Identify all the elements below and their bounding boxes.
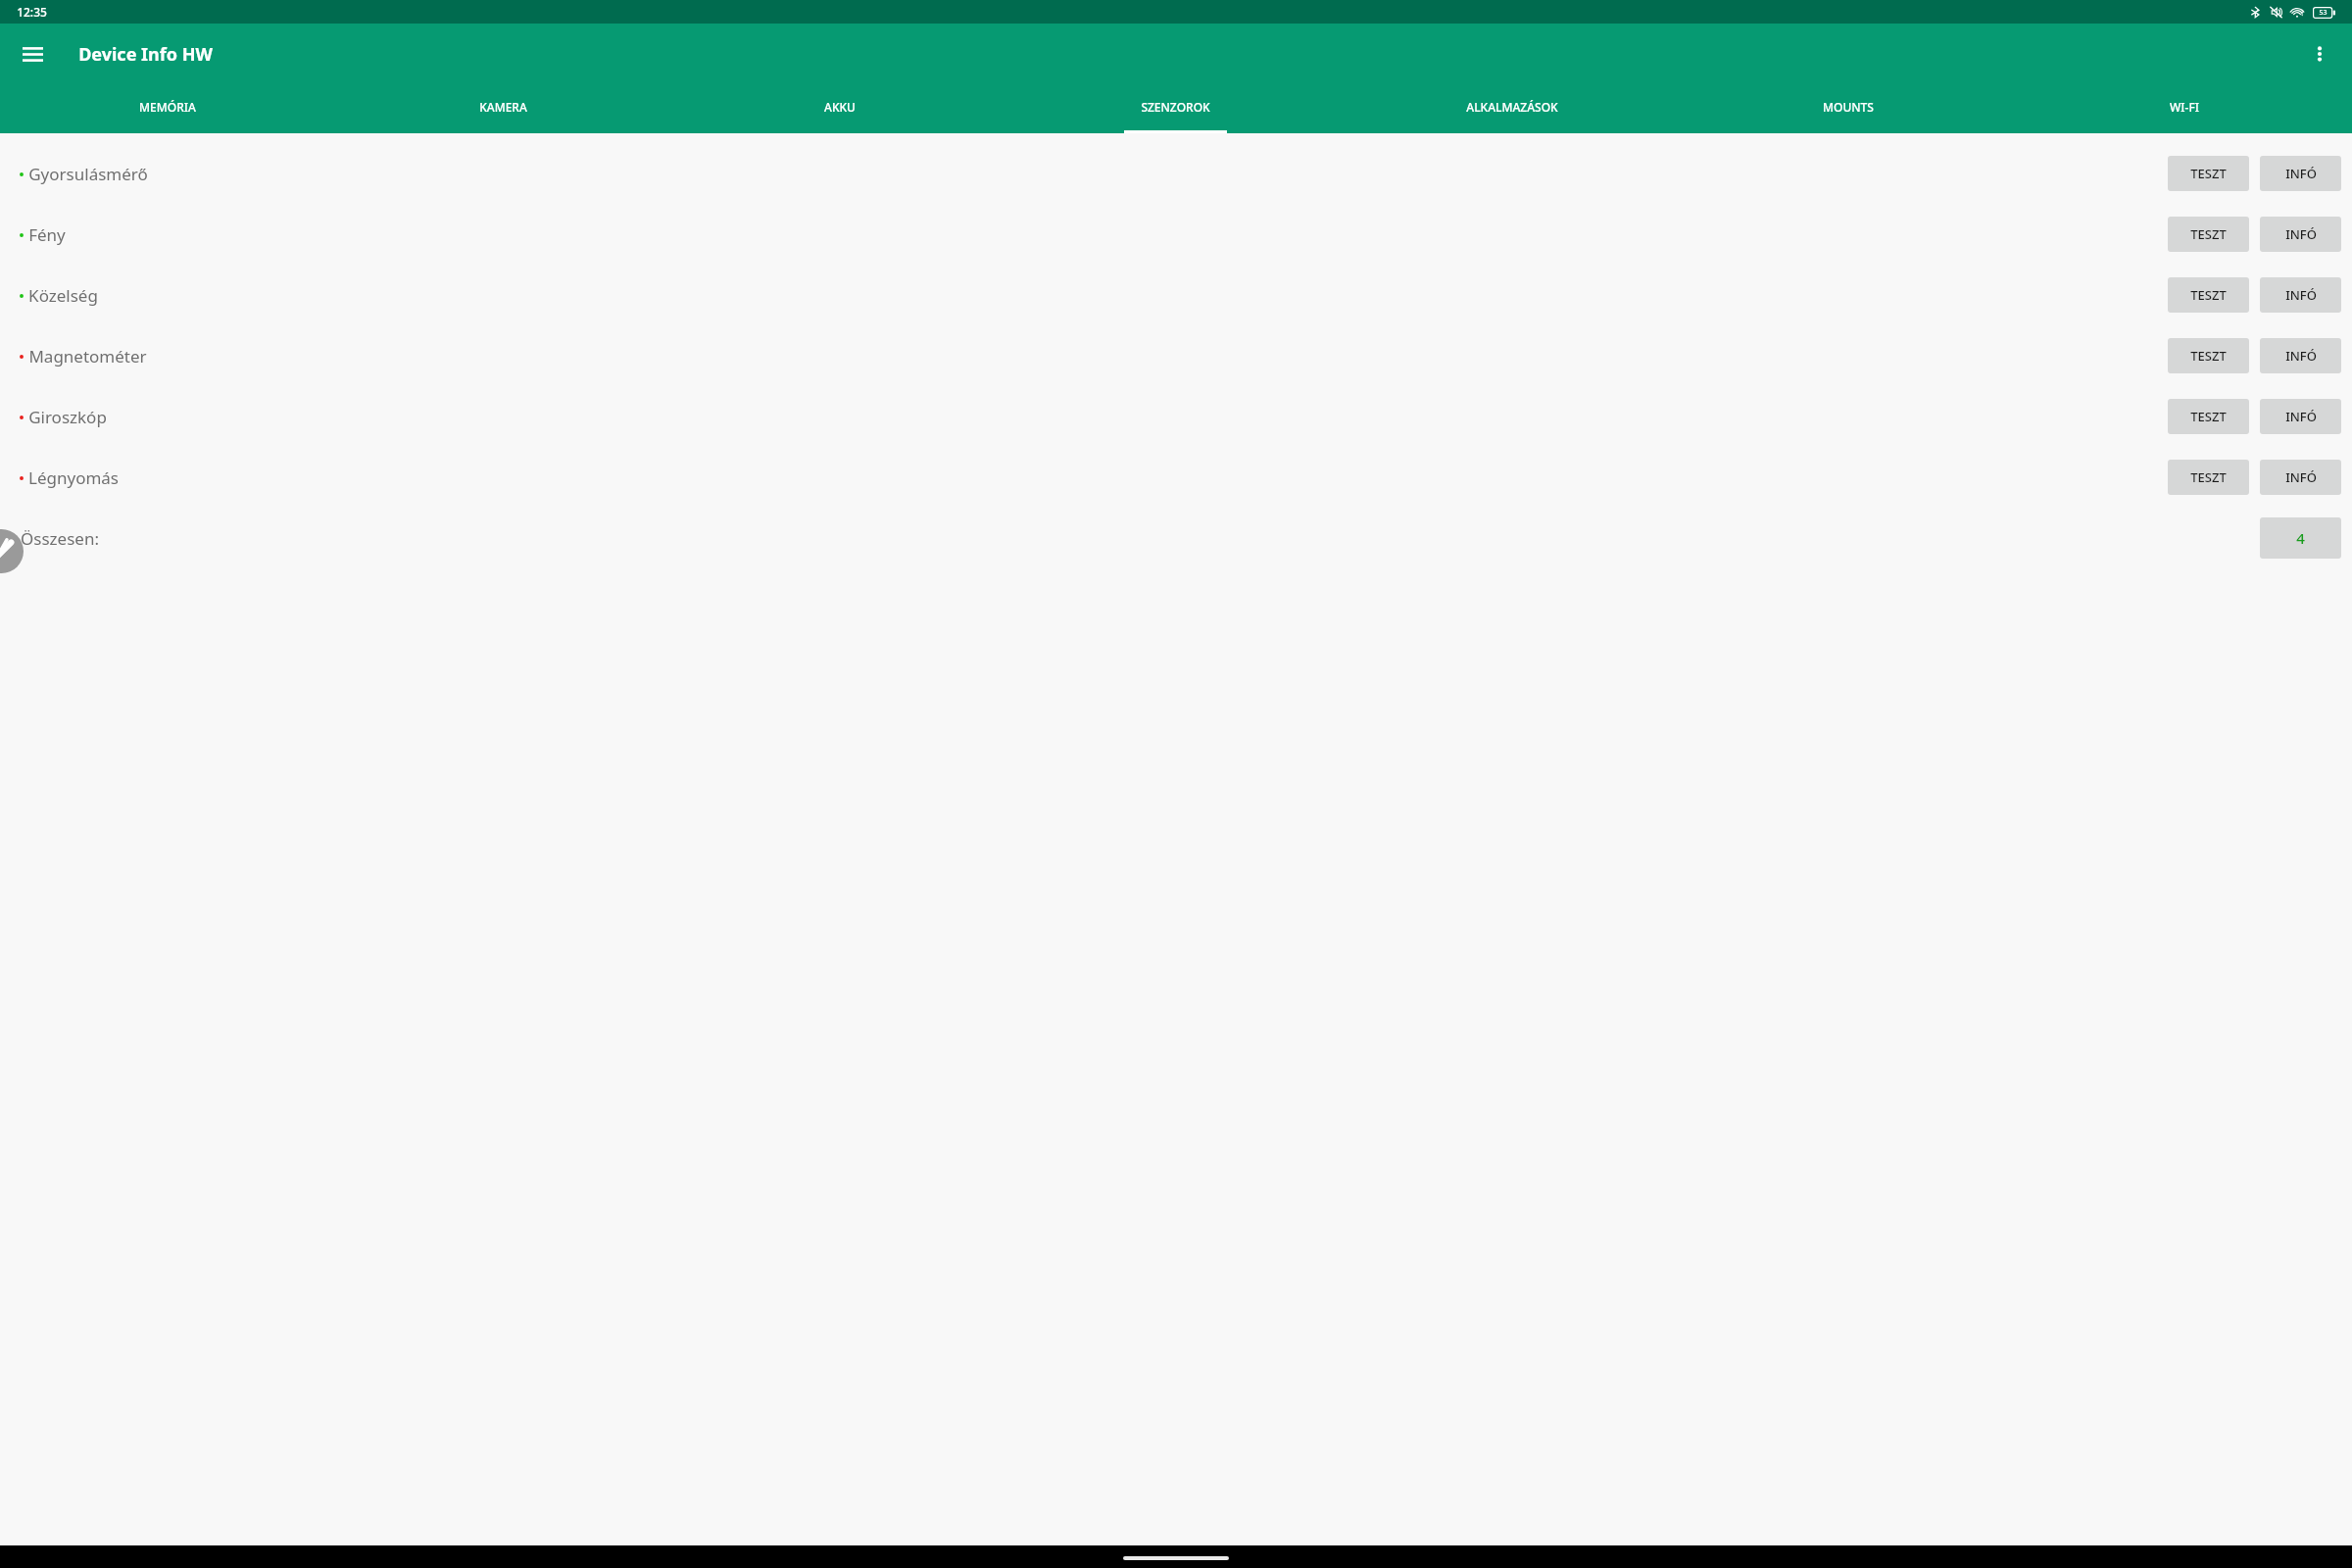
button[interactable]: SZENZOROK bbox=[1007, 84, 1344, 133]
staticText: TESZT bbox=[2190, 225, 2227, 243]
staticText: MOUNTS bbox=[1823, 99, 1874, 115]
staticText: TESZT bbox=[2190, 165, 2227, 182]
staticText: TESZT bbox=[2190, 468, 2227, 486]
staticText: Gyorsulásmérő bbox=[28, 163, 148, 185]
staticText: Légnyomás bbox=[28, 466, 119, 489]
staticText: Magnetométer bbox=[28, 345, 147, 367]
button[interactable]: INFÓ bbox=[2260, 217, 2341, 252]
staticText: Device Info HW bbox=[78, 42, 213, 67]
button[interactable]: KAMERA bbox=[335, 84, 671, 133]
staticText: INFÓ bbox=[2285, 408, 2317, 425]
button[interactable]: MEMÓRIA bbox=[0, 84, 335, 133]
staticText: INFÓ bbox=[2285, 165, 2317, 182]
button[interactable]: INFÓ bbox=[2260, 399, 2341, 434]
staticText: KAMERA bbox=[479, 99, 527, 115]
button[interactable]: AKKU bbox=[671, 84, 1007, 133]
button[interactable]: TESZT bbox=[2168, 460, 2249, 495]
staticText: Fény bbox=[28, 223, 66, 246]
staticText: SZENZOROK bbox=[1141, 99, 1210, 115]
button[interactable]: WI-FI bbox=[2016, 84, 2352, 133]
staticText: INFÓ bbox=[2285, 286, 2317, 304]
staticText: TESZT bbox=[2190, 286, 2227, 304]
button[interactable]: INFÓ bbox=[2260, 156, 2341, 191]
button[interactable]: Edit bbox=[0, 529, 24, 573]
button[interactable]: Közelség bbox=[0, 265, 2352, 325]
staticText: 53 bbox=[2319, 8, 2327, 18]
button[interactable]: More options bbox=[2297, 31, 2342, 76]
staticText: 4 bbox=[2296, 528, 2305, 548]
button[interactable]: Giroszkóp bbox=[0, 386, 2352, 447]
staticText: INFÓ bbox=[2285, 347, 2317, 365]
button[interactable]: 4 bbox=[2260, 517, 2341, 559]
staticText: Összesen: bbox=[21, 527, 99, 550]
staticText: Giroszkóp bbox=[28, 406, 107, 428]
staticText: INFÓ bbox=[2285, 468, 2317, 486]
button[interactable]: INFÓ bbox=[2260, 338, 2341, 373]
staticText: INFÓ bbox=[2285, 225, 2317, 243]
staticText: TESZT bbox=[2190, 347, 2227, 365]
button[interactable]: Légnyomás bbox=[0, 447, 2352, 508]
button[interactable]: TESZT bbox=[2168, 217, 2249, 252]
button[interactable]: Magnetométer bbox=[0, 325, 2352, 386]
button[interactable]: TESZT bbox=[2168, 156, 2249, 191]
button[interactable]: INFÓ bbox=[2260, 277, 2341, 313]
button[interactable]: TESZT bbox=[2168, 399, 2249, 434]
button[interactable]: Gyorsulásmérő bbox=[0, 143, 2352, 204]
button[interactable]: MOUNTS bbox=[1680, 84, 2016, 133]
button[interactable]: TESZT bbox=[2168, 277, 2249, 313]
button[interactable]: Fény bbox=[0, 204, 2352, 265]
button[interactable]: INFÓ bbox=[2260, 460, 2341, 495]
staticText: MEMÓRIA bbox=[139, 99, 196, 115]
staticText: 12:35 bbox=[17, 4, 47, 20]
staticText: ALKALMAZÁSOK bbox=[1466, 99, 1558, 115]
staticText: TESZT bbox=[2190, 408, 2227, 425]
button[interactable]: ALKALMAZÁSOK bbox=[1344, 84, 1680, 133]
button[interactable]: TESZT bbox=[2168, 338, 2249, 373]
staticText: WI-FI bbox=[2170, 99, 2199, 115]
staticText: Közelség bbox=[28, 284, 98, 307]
staticText: AKKU bbox=[824, 99, 856, 115]
button[interactable]: Menu bbox=[10, 31, 55, 76]
